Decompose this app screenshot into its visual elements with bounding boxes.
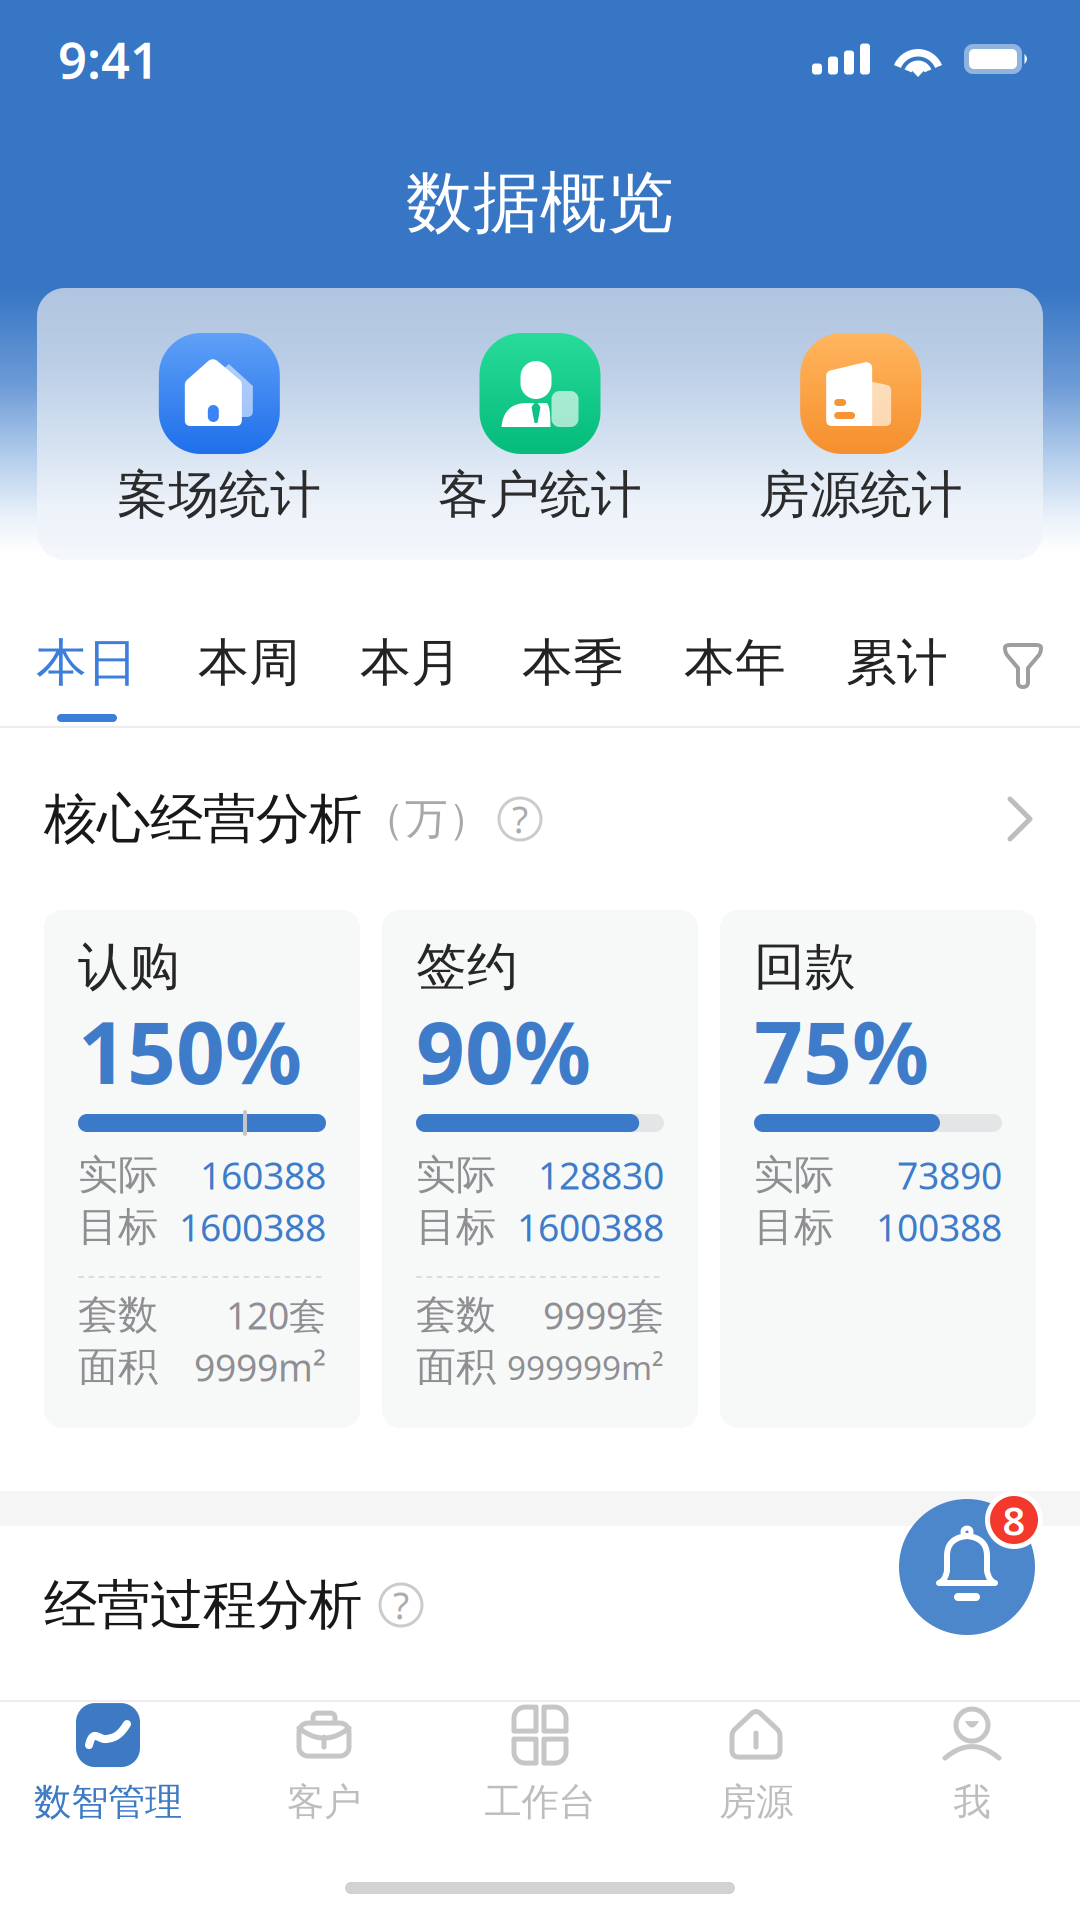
staticText: 我 [953,1779,990,1825]
staticText: 本季 [522,632,624,694]
staticText: 经营过程分析 [44,1572,362,1638]
staticText: 75% [754,994,929,1108]
button[interactable]: 通知 [899,1491,1043,1635]
button[interactable]: 本年 [654,560,816,726]
staticText: 8 [1002,1493,1025,1546]
staticText: 目标 [78,1202,158,1251]
button[interactable]: 客户统计 [380,288,700,560]
button[interactable]: 工作台 [432,1702,648,1826]
staticText: 客户统计 [438,464,642,526]
staticText: （万） [362,793,491,845]
button[interactable]: 我 [864,1702,1080,1826]
staticText: 目标 [416,1202,496,1251]
staticText: 9999套 [543,1290,664,1340]
staticText: 面积 [78,1342,158,1391]
staticText: 面积 [416,1342,496,1391]
staticText: 本月 [360,632,462,694]
button[interactable]: 案场统计 [59,288,380,560]
staticText: 90% [416,994,591,1108]
staticText: 100388 [876,1202,1002,1252]
staticText: 120套 [226,1290,326,1340]
button[interactable]: 房源 [648,1702,864,1826]
staticText: 套数 [416,1290,496,1339]
button[interactable]: 本日 [6,560,168,726]
button[interactable]: 数智管理 [0,1702,216,1826]
staticText: 核心经营分析 [44,786,362,852]
staticText: 本日 [36,632,138,694]
staticText: 回款 [754,936,856,998]
button[interactable]: 客户 [216,1702,432,1826]
button[interactable]: 本季 [492,560,654,726]
staticText: 9999m² [194,1342,326,1392]
staticText: 150% [78,994,302,1108]
button[interactable]: 筛选 [978,560,1068,726]
staticText: 签约 [416,936,518,998]
staticText: 实际 [754,1150,834,1199]
staticText: 数据概览 [406,162,674,244]
staticText: 房源统计 [759,464,963,526]
button[interactable]: 房源统计 [700,288,1021,560]
staticText: ? [512,794,528,844]
staticText: 累计 [846,632,948,694]
staticText: 160388 [200,1150,326,1200]
staticText: 工作台 [484,1779,595,1825]
staticText: 案场统计 [117,464,321,526]
staticText: 目标 [754,1202,834,1251]
staticText: 9:41 [58,25,159,93]
staticText: 房源 [719,1779,793,1825]
staticText: 128830 [538,1150,664,1200]
staticText: 1600388 [179,1202,326,1252]
staticText: 实际 [78,1150,158,1199]
staticText: 数智管理 [34,1779,182,1825]
staticText: 999999m² [507,1345,664,1389]
staticText: 套数 [78,1290,158,1339]
staticText: 本年 [684,632,786,694]
staticText: ? [393,1580,409,1630]
staticText: 本周 [198,632,300,694]
staticText: 客户 [287,1779,361,1825]
button[interactable]: 本周 [168,560,330,726]
staticText: 1600388 [517,1202,664,1252]
staticText: 实际 [416,1150,496,1199]
staticText: 73890 [897,1150,1002,1200]
staticText: 认购 [78,936,180,998]
button[interactable]: 累计 [816,560,978,726]
button[interactable]: 本月 [330,560,492,726]
button[interactable]: 查看更多 [986,778,1056,860]
